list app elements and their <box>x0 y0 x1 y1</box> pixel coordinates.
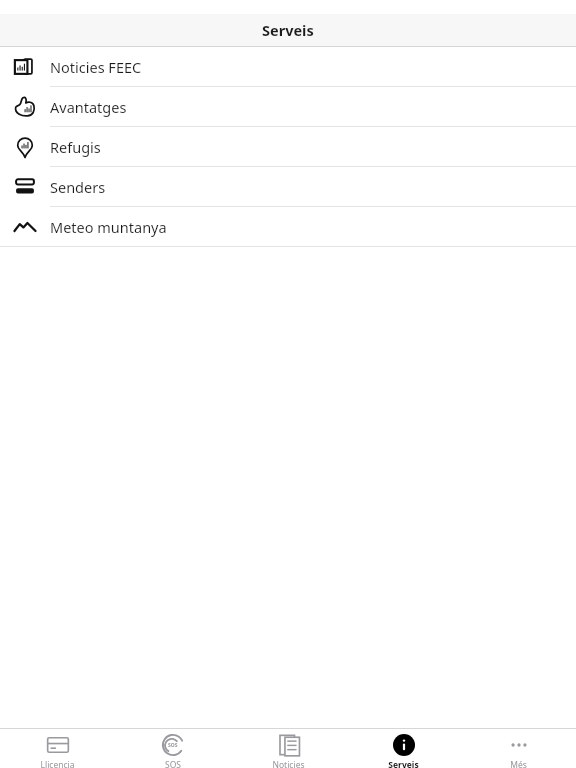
button[interactable]: Avantatges <box>0 87 576 127</box>
button[interactable]: Senders <box>0 167 576 207</box>
staticText: Avantatges <box>50 97 127 117</box>
button[interactable]: Meteo muntanya <box>0 207 576 247</box>
button[interactable]: Noticies <box>231 729 346 768</box>
staticText: Més <box>510 759 527 768</box>
staticText: Refugis <box>50 137 101 157</box>
staticText: Senders <box>50 177 106 197</box>
staticText: Serveis <box>388 759 419 768</box>
staticText: Llicencia <box>40 759 75 768</box>
button[interactable]: Serveis <box>346 729 461 768</box>
staticText: Meteo muntanya <box>50 217 167 237</box>
staticText: SOS <box>168 742 178 749</box>
button[interactable]: Llicencia <box>0 729 115 768</box>
button[interactable]: Noticies FEEC <box>0 47 576 87</box>
button[interactable]: SOS <box>115 729 230 768</box>
staticText: SOS <box>165 759 181 768</box>
staticText: Noticies FEEC <box>50 57 142 77</box>
staticText: Noticies <box>272 759 305 768</box>
button[interactable]: Més <box>461 729 576 768</box>
staticText: Serveis <box>262 20 314 40</box>
button[interactable]: Refugis <box>0 127 576 167</box>
